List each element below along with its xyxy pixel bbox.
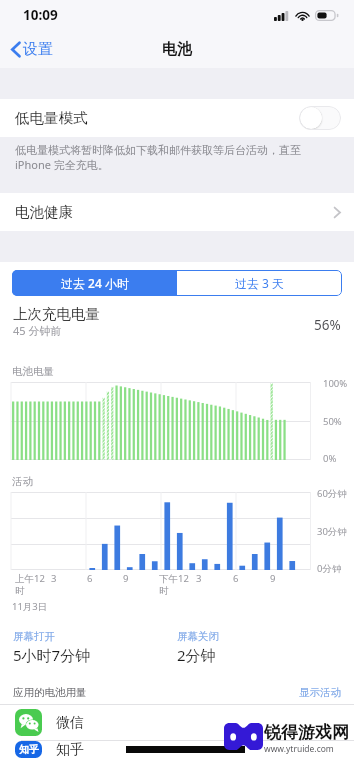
staticText: 低电量模式将暂时降低如下载和邮件获取等后台活动，直至 iPhone 完全充电。 <box>15 143 301 172</box>
staticText: 上午12 时 <box>15 572 45 596</box>
staticText: 6 <box>233 572 239 585</box>
staticText: 9 <box>123 572 129 585</box>
staticText: 3 <box>51 572 57 585</box>
staticText: 过去 3 天 <box>235 275 285 291</box>
staticText: 56% <box>314 316 341 334</box>
staticText: 上次充电电量 <box>13 305 100 323</box>
staticText: www.ytruide.com <box>264 743 334 755</box>
staticText: 50% <box>323 415 342 428</box>
staticText: 活动 <box>12 475 33 488</box>
button[interactable]: 设置 <box>0 35 61 64</box>
staticText: 应用的电池用量 <box>13 686 87 699</box>
staticText: 设置 <box>23 40 53 59</box>
staticText: 2分钟 <box>177 645 216 665</box>
staticText: 9 <box>270 572 276 585</box>
staticText: 6 <box>87 572 93 585</box>
staticText: 11月3日 <box>12 600 48 613</box>
button[interactable]: 低电量模式 <box>0 99 354 137</box>
staticText: 知乎 <box>19 743 39 756</box>
staticText: 屏幕打开 <box>13 630 55 643</box>
button[interactable]: 知乎 <box>0 741 354 758</box>
staticText: 60分钟 <box>317 487 347 500</box>
button[interactable]: 过去 3 天 <box>177 270 342 296</box>
staticText: 下午12 时 <box>159 572 189 596</box>
staticText: 锐得游戏网 <box>264 722 349 743</box>
staticText: 0分钟 <box>317 562 342 575</box>
staticText: 100% <box>323 377 348 390</box>
staticText: 电池 <box>162 40 192 59</box>
staticText: 低电量模式 <box>15 109 88 127</box>
button[interactable]: 显示活动 <box>299 686 341 699</box>
staticText: 过去 24 小时 <box>61 275 129 291</box>
button[interactable]: 电池健康 <box>0 193 354 231</box>
button[interactable]: 过去 24 小时 <box>12 270 177 296</box>
staticText: 屏幕关闭 <box>177 630 219 643</box>
staticText: 微信 <box>56 714 84 732</box>
staticText: 45 分钟前 <box>13 323 62 338</box>
staticText: 电池健康 <box>15 203 73 221</box>
staticText: 3 <box>196 572 202 585</box>
staticText: 知乎 <box>56 741 84 758</box>
other: Open <box>333 206 341 219</box>
staticText: 电池电量 <box>12 365 54 378</box>
staticText: 显示活动 <box>299 686 341 699</box>
button[interactable]: 微信 <box>0 705 354 740</box>
staticText: 5小时7分钟 <box>13 645 91 665</box>
staticText: 30分钟 <box>317 525 347 538</box>
button[interactable]: Low Power Mode toggle <box>299 106 341 130</box>
staticText: 0% <box>323 452 337 465</box>
staticText: 10:09 <box>23 6 58 24</box>
